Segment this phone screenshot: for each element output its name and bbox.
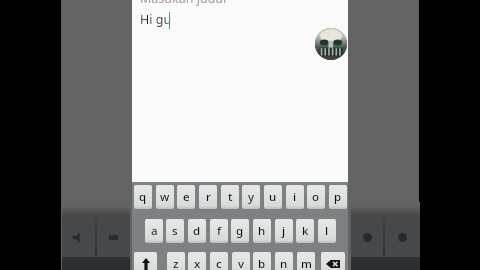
staticText: Masukan judul (140, 0, 227, 7)
button[interactable]: Shift (134, 252, 157, 270)
button[interactable]: c (210, 252, 228, 270)
staticText: q (139, 189, 147, 205)
staticText: g (236, 223, 244, 239)
button[interactable]: b (253, 252, 271, 270)
button[interactable]: g (231, 219, 249, 243)
staticText: y (248, 189, 255, 205)
staticText: b (258, 256, 266, 270)
staticText: k (302, 223, 309, 239)
button[interactable]: z (167, 252, 185, 270)
staticText: h (258, 223, 266, 239)
staticText: d (193, 223, 201, 239)
staticText: e (183, 189, 190, 205)
button[interactable]: w (156, 185, 174, 209)
staticText: t (228, 189, 233, 205)
button[interactable]: t (221, 185, 239, 209)
button[interactable]: q (134, 185, 152, 209)
button[interactable]: l (318, 219, 336, 243)
staticText: o (312, 189, 320, 205)
button[interactable]: i (286, 185, 304, 209)
button[interactable]: a (145, 219, 163, 243)
staticText: m (301, 256, 312, 270)
button[interactable]: k (296, 219, 314, 243)
staticText: c (216, 256, 222, 270)
button[interactable]: r (199, 185, 217, 209)
button[interactable]: p (329, 185, 347, 209)
staticText: x (194, 256, 201, 270)
staticText: Hi gu (140, 11, 172, 28)
button[interactable]: Brightness (97, 217, 130, 257)
staticText: i (293, 189, 297, 205)
button[interactable]: More options (385, 217, 420, 257)
button[interactable]: Profile photo (315, 28, 347, 60)
button[interactable]: v (232, 252, 250, 270)
staticText: v (238, 256, 245, 270)
button[interactable]: Volume (62, 217, 95, 257)
button[interactable]: e (177, 185, 195, 209)
button[interactable]: o (307, 185, 325, 209)
button[interactable]: y (242, 185, 260, 209)
button[interactable]: u (264, 185, 282, 209)
button[interactable]: Aspect ratio (351, 217, 383, 257)
staticText: f (217, 223, 222, 239)
button[interactable]: j (275, 219, 293, 243)
button[interactable]: Backspace (321, 252, 345, 270)
button[interactable]: x (188, 252, 206, 270)
button[interactable]: h (253, 219, 271, 243)
button[interactable]: m (297, 252, 315, 270)
button[interactable]: n (275, 252, 293, 270)
staticText: w (160, 189, 170, 205)
staticText: r (206, 189, 211, 205)
staticText: u (269, 189, 277, 205)
staticText: z (173, 256, 179, 270)
button[interactable]: s (166, 219, 184, 243)
staticText: p (334, 189, 342, 205)
button[interactable]: f (210, 219, 228, 243)
staticText: n (280, 256, 288, 270)
button[interactable]: d (188, 219, 206, 243)
staticText: j (282, 223, 286, 239)
staticText: a (151, 223, 158, 239)
staticText: s (172, 223, 178, 239)
staticText: l (325, 223, 329, 239)
